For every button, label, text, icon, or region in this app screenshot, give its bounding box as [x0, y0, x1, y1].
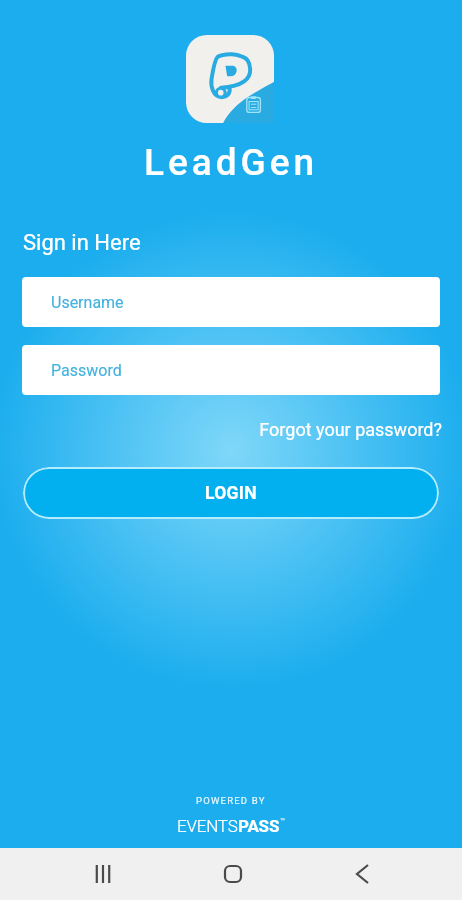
button[interactable]: Back	[332, 848, 392, 900]
staticText: PASS	[238, 816, 280, 836]
staticText: Password	[51, 361, 122, 380]
staticText: Username	[51, 293, 124, 312]
button[interactable]: Recent apps	[73, 848, 133, 900]
staticText: EVENTS	[177, 816, 238, 836]
button[interactable]: LOGIN	[23, 467, 439, 519]
staticText: LeadGen	[0, 141, 462, 184]
staticText: POWERED BY	[196, 795, 266, 806]
button[interactable]: Home	[203, 848, 263, 900]
staticText: LOGIN	[205, 483, 257, 504]
staticText: Sign in Here	[23, 230, 141, 256]
button[interactable]: Username	[22, 277, 440, 327]
button[interactable]: Forgot your password?	[0, 419, 442, 440]
staticText: ™	[280, 817, 286, 826]
button[interactable]: Password	[22, 345, 440, 395]
